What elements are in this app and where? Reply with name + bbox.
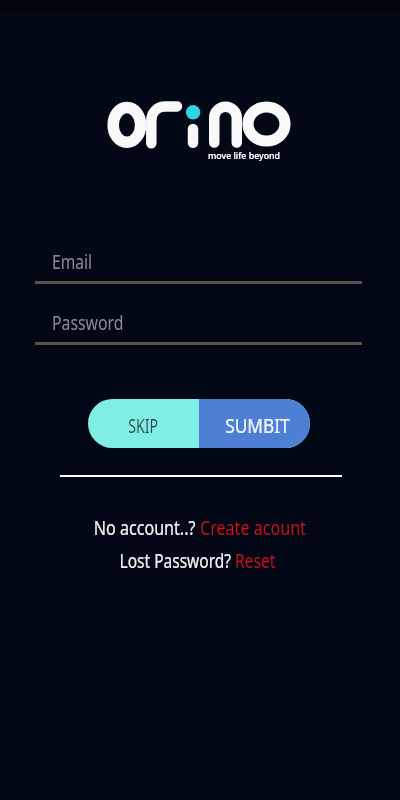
staticText: Lost Password? <box>120 547 235 574</box>
staticText: move life beyond <box>208 149 280 162</box>
staticText: SKIP <box>128 413 159 439</box>
button[interactable]: Email <box>35 246 362 284</box>
button[interactable]: Reset <box>235 547 275 574</box>
staticText: Password <box>52 309 124 336</box>
staticText: SUMBIT <box>225 413 290 439</box>
button[interactable]: SKIP <box>88 399 199 448</box>
button[interactable]: SUMBIT <box>199 399 310 448</box>
staticText: Email <box>52 248 93 275</box>
button[interactable]: Create acount <box>200 514 306 541</box>
button[interactable]: Password <box>35 307 362 345</box>
staticText: No account..? <box>94 514 200 541</box>
